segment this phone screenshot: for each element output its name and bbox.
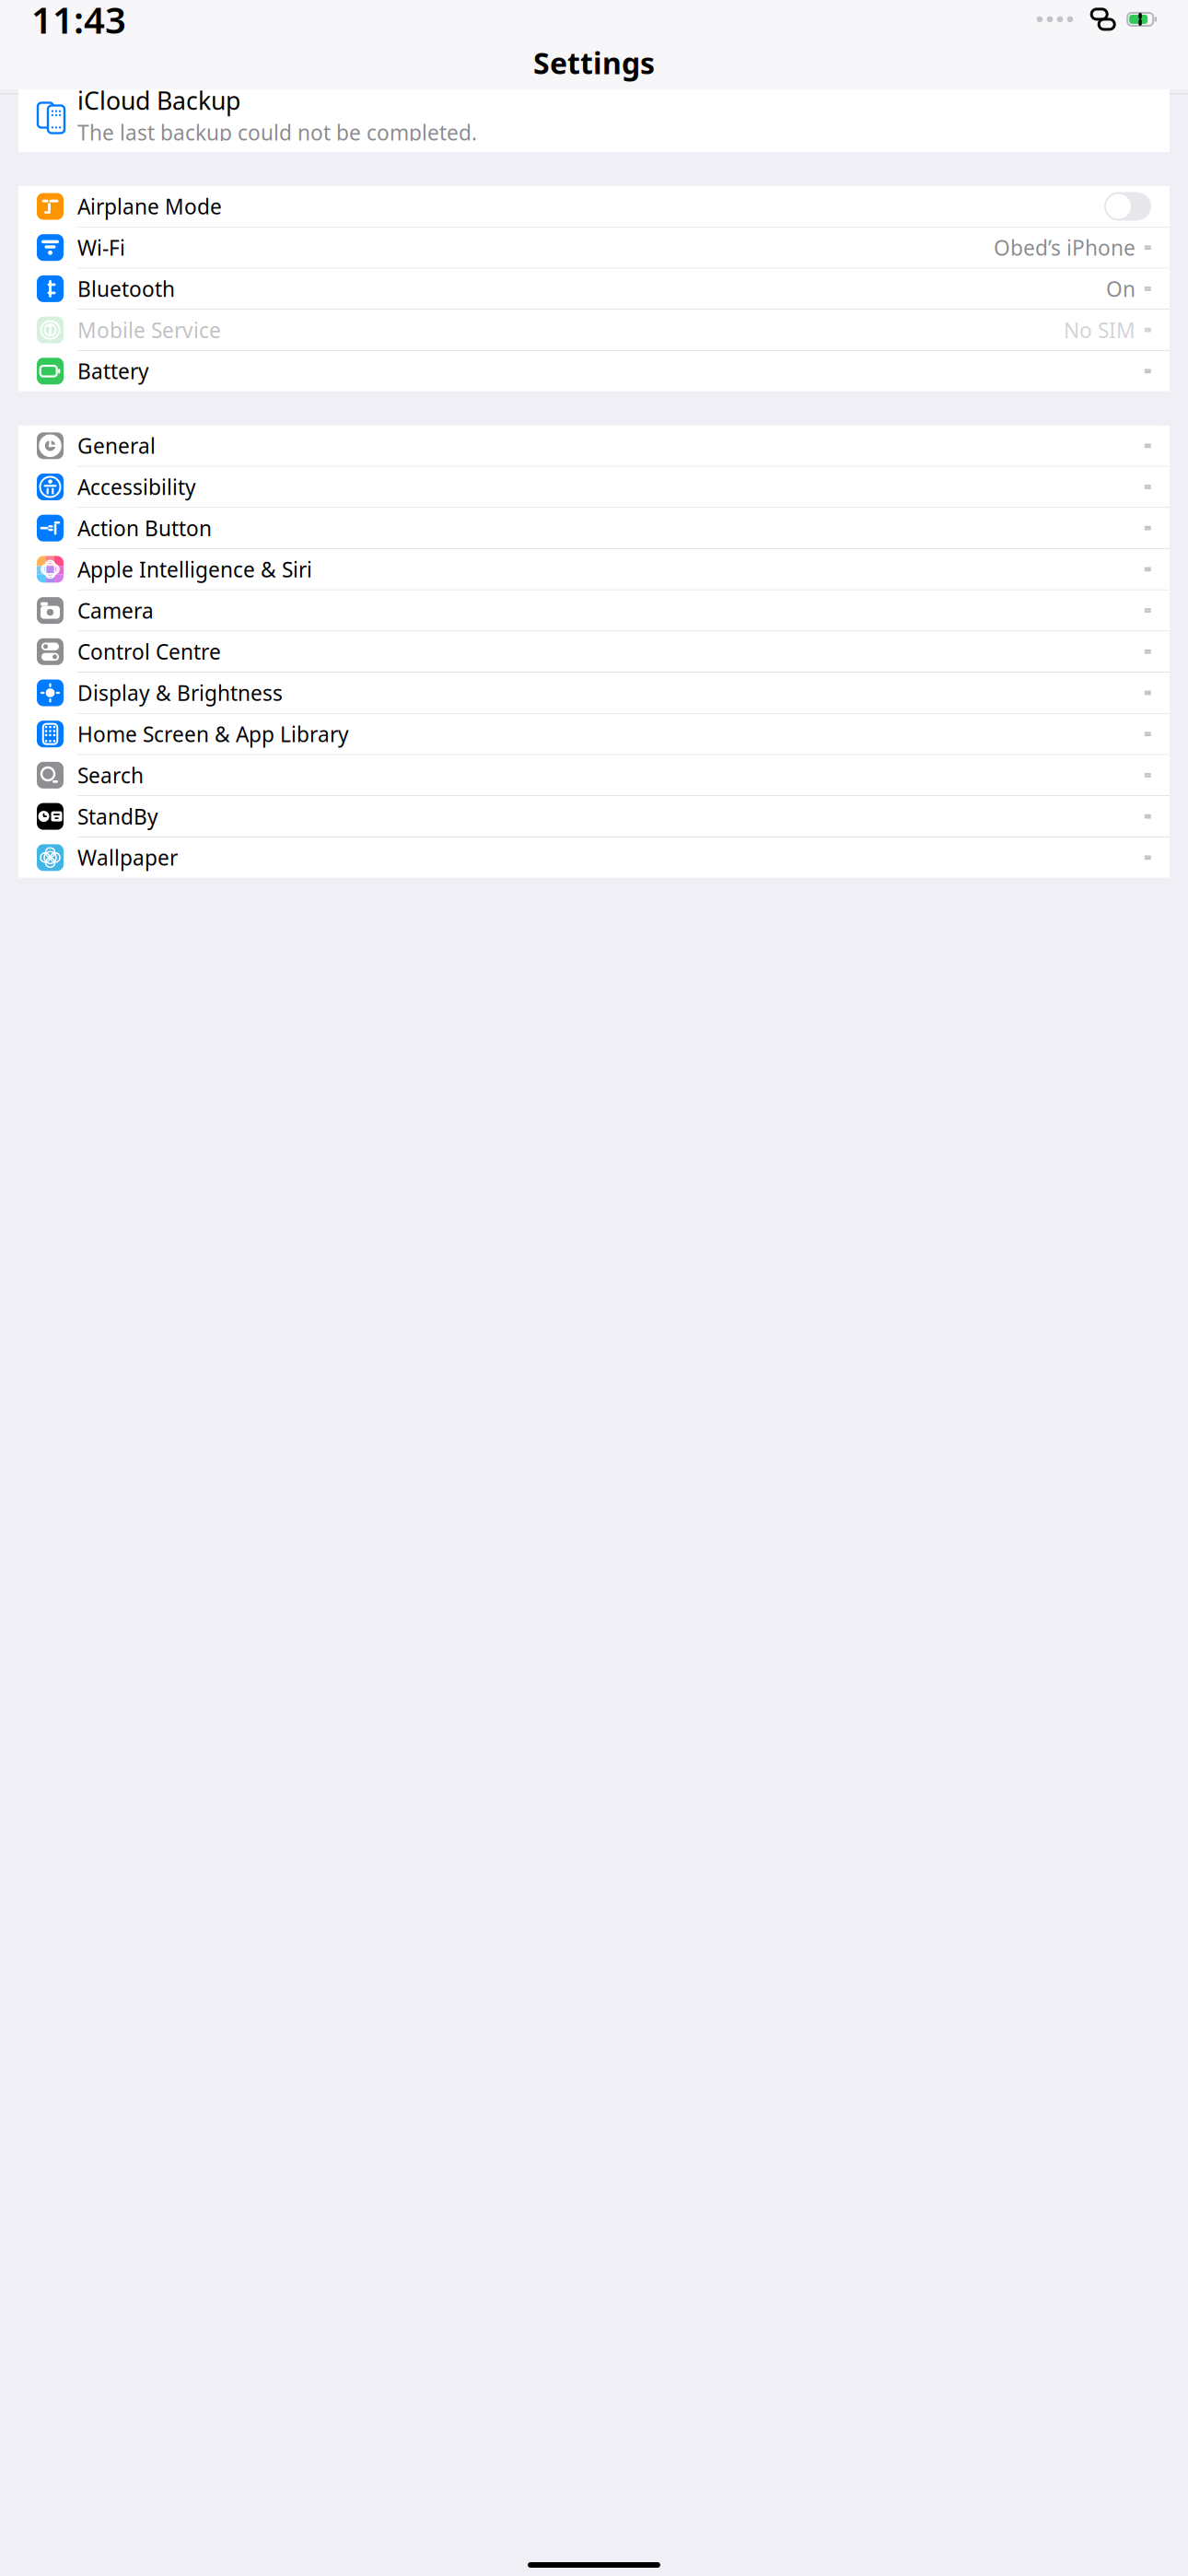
- button[interactable]: iCloud Backup: [18, 89, 1170, 141]
- staticText: Accessibility: [77, 473, 196, 501]
- button[interactable]: Battery: [18, 351, 1170, 391]
- button[interactable]: StandBy: [18, 796, 1170, 837]
- staticText: Search: [77, 761, 144, 789]
- button[interactable]: Mobile Service: [18, 310, 1170, 350]
- staticText: Airplane Mode: [77, 192, 222, 220]
- button[interactable]: Control Centre: [18, 631, 1170, 672]
- button[interactable]: General: [18, 425, 1170, 466]
- staticText: Bluetooth: [77, 275, 175, 303]
- button[interactable]: Bluetooth: [18, 268, 1170, 309]
- staticText: No SIM: [1064, 316, 1136, 344]
- staticText: Home Screen & App Library: [77, 720, 349, 748]
- staticText: Action Button: [77, 514, 212, 542]
- button[interactable]: Wallpaper: [18, 837, 1170, 878]
- button[interactable]: Search: [18, 755, 1170, 795]
- button[interactable]: Apple Intelligence & Siri: [18, 549, 1170, 590]
- staticText: Mobile Service: [77, 316, 221, 344]
- button[interactable]: Wi-Fi: [18, 227, 1170, 268]
- staticText: Camera: [77, 597, 154, 624]
- staticText: Battery: [77, 357, 149, 385]
- staticText: Apple Intelligence & Siri: [77, 555, 312, 583]
- staticText: General: [77, 432, 156, 460]
- staticText: The last backup could not be completed.: [77, 119, 477, 146]
- staticText: Settings: [533, 43, 655, 82]
- button[interactable]: Accessibility: [18, 467, 1170, 507]
- button[interactable]: Home Screen & App Library: [18, 714, 1170, 754]
- staticText: Display & Brightness: [77, 679, 283, 707]
- staticText: On: [1106, 275, 1136, 303]
- staticText: Obed’s iPhone: [994, 234, 1136, 261]
- button[interactable]: Action Button: [18, 508, 1170, 548]
- staticText: 11:43: [31, 0, 126, 44]
- staticText: Wallpaper: [77, 844, 178, 871]
- staticText: iCloud Backup: [77, 84, 240, 117]
- button[interactable]: Airplane Mode: [18, 186, 1170, 227]
- staticText: Wi-Fi: [77, 234, 125, 261]
- button[interactable]: Display & Brightness: [18, 673, 1170, 713]
- staticText: Control Centre: [77, 638, 221, 665]
- staticText: StandBy: [77, 802, 158, 830]
- button[interactable]: Camera: [18, 590, 1170, 631]
